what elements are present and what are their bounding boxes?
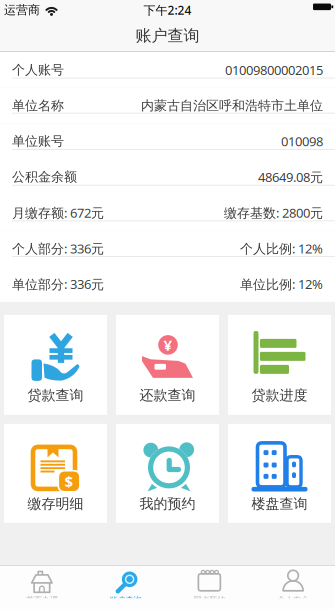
staticText: 账户查询	[135, 26, 199, 45]
staticText: 楼盘查询	[251, 495, 307, 512]
staticText: 首页办理	[26, 595, 58, 605]
staticText: 公积金余额	[12, 169, 77, 185]
staticText: 下午2:24	[143, 2, 191, 18]
staticText: $	[65, 471, 74, 491]
button[interactable]: 网点预约	[167, 566, 251, 609]
button[interactable]: ¥	[116, 315, 219, 415]
staticText: 个人账号	[12, 62, 64, 78]
staticText: 单位比例: 12%	[240, 275, 323, 293]
button[interactable]: 贷款查询	[4, 315, 107, 415]
button[interactable]: 我的预约	[116, 424, 219, 523]
staticText: 网点预约	[193, 595, 225, 605]
button[interactable]: 楼盘查询	[228, 424, 331, 523]
staticText: 内蒙古自治区呼和浩特市土单位	[141, 98, 323, 114]
staticText: 单位部分: 336元	[12, 275, 104, 293]
staticText: 缴存明细	[27, 495, 83, 512]
staticText: 贷款进度	[251, 387, 307, 404]
staticText: 月缴存额: 672元	[12, 204, 104, 221]
staticText: 010098	[281, 133, 323, 150]
staticText: 账户查询	[110, 595, 142, 605]
staticText: 01009800002015	[225, 61, 323, 78]
staticText: 我的预约	[139, 495, 195, 512]
staticText: 个人部分: 336元	[12, 240, 104, 257]
staticText: 还款查询	[139, 387, 195, 404]
staticText: 贷款查询	[27, 387, 83, 404]
staticText: 运营商	[4, 3, 40, 17]
button[interactable]: $	[4, 424, 107, 523]
staticText: 48649.08元	[258, 168, 323, 186]
staticText: 缴存基数: 2800元	[224, 204, 323, 221]
staticText: 单位账号	[12, 133, 64, 149]
button[interactable]: 贷款进度	[228, 315, 331, 415]
button[interactable]: 个人中心	[251, 566, 335, 609]
staticText: 个人比例: 12%	[240, 240, 323, 257]
button[interactable]: 首页办理	[0, 566, 84, 609]
button[interactable]: 账户查询	[84, 566, 168, 609]
staticText: 单位名称	[12, 98, 64, 114]
staticText: ¥	[163, 335, 172, 355]
staticText: 个人中心	[277, 595, 309, 605]
